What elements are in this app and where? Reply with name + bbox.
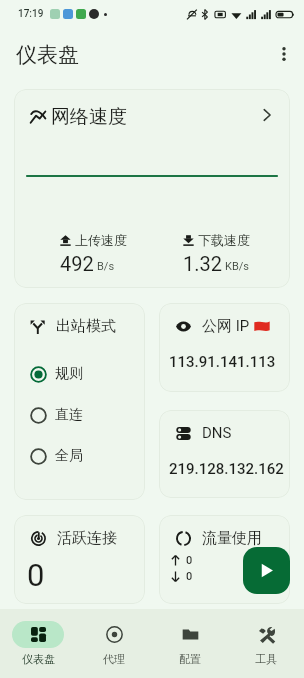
staticText: 219.128.132.162 (169, 460, 284, 478)
staticText: 直连 (55, 406, 83, 424)
button[interactable]: 出站模式 (14, 303, 145, 500)
button[interactable]: 工具 (228, 609, 304, 678)
button[interactable]: 公网 IP (159, 303, 290, 392)
staticText: 下载速度 (198, 232, 250, 248)
staticText: 公网 IP (202, 317, 250, 336)
staticText: 工具 (255, 652, 277, 666)
button[interactable]: 网络速度 (14, 89, 290, 288)
staticText: 上传速度 (75, 232, 127, 248)
staticText: 0 (27, 557, 45, 593)
button[interactable]: 流量使用 (159, 515, 290, 604)
button[interactable]: 全局 (14, 444, 145, 468)
staticText: 仪表盘 (22, 652, 55, 666)
staticText: B/s (97, 260, 115, 273)
staticText: 113.91.141.113 (169, 353, 276, 371)
staticText: 流量使用 (202, 529, 262, 548)
staticText: 仪表盘 (16, 42, 79, 68)
staticText: 0 (186, 570, 193, 583)
staticText: 配置 (179, 652, 201, 666)
staticText: DNS (202, 424, 232, 442)
staticText: 网络速度 (51, 105, 127, 129)
button[interactable]: 直连 (14, 403, 145, 427)
button[interactable]: 代理 (76, 609, 152, 678)
button[interactable]: More options (266, 36, 302, 72)
button[interactable]: Start VPN (243, 547, 290, 594)
staticText: 0 (186, 554, 193, 567)
staticText: 出站模式 (56, 317, 116, 336)
staticText: KB/s (225, 260, 249, 273)
staticText: 全局 (55, 447, 83, 465)
button[interactable]: 活跃连接 (14, 515, 145, 604)
staticText: 活跃连接 (57, 529, 117, 548)
staticText: 1.32 (183, 252, 222, 275)
staticText: 规则 (55, 365, 83, 383)
button[interactable]: 仪表盘 (0, 609, 76, 678)
staticText: 492 (60, 252, 94, 275)
staticText: 代理 (103, 652, 125, 666)
button[interactable]: 规则 (14, 362, 145, 386)
staticText: 17:19 (18, 8, 44, 20)
button[interactable]: DNS (159, 410, 290, 498)
button[interactable]: 配置 (152, 609, 228, 678)
